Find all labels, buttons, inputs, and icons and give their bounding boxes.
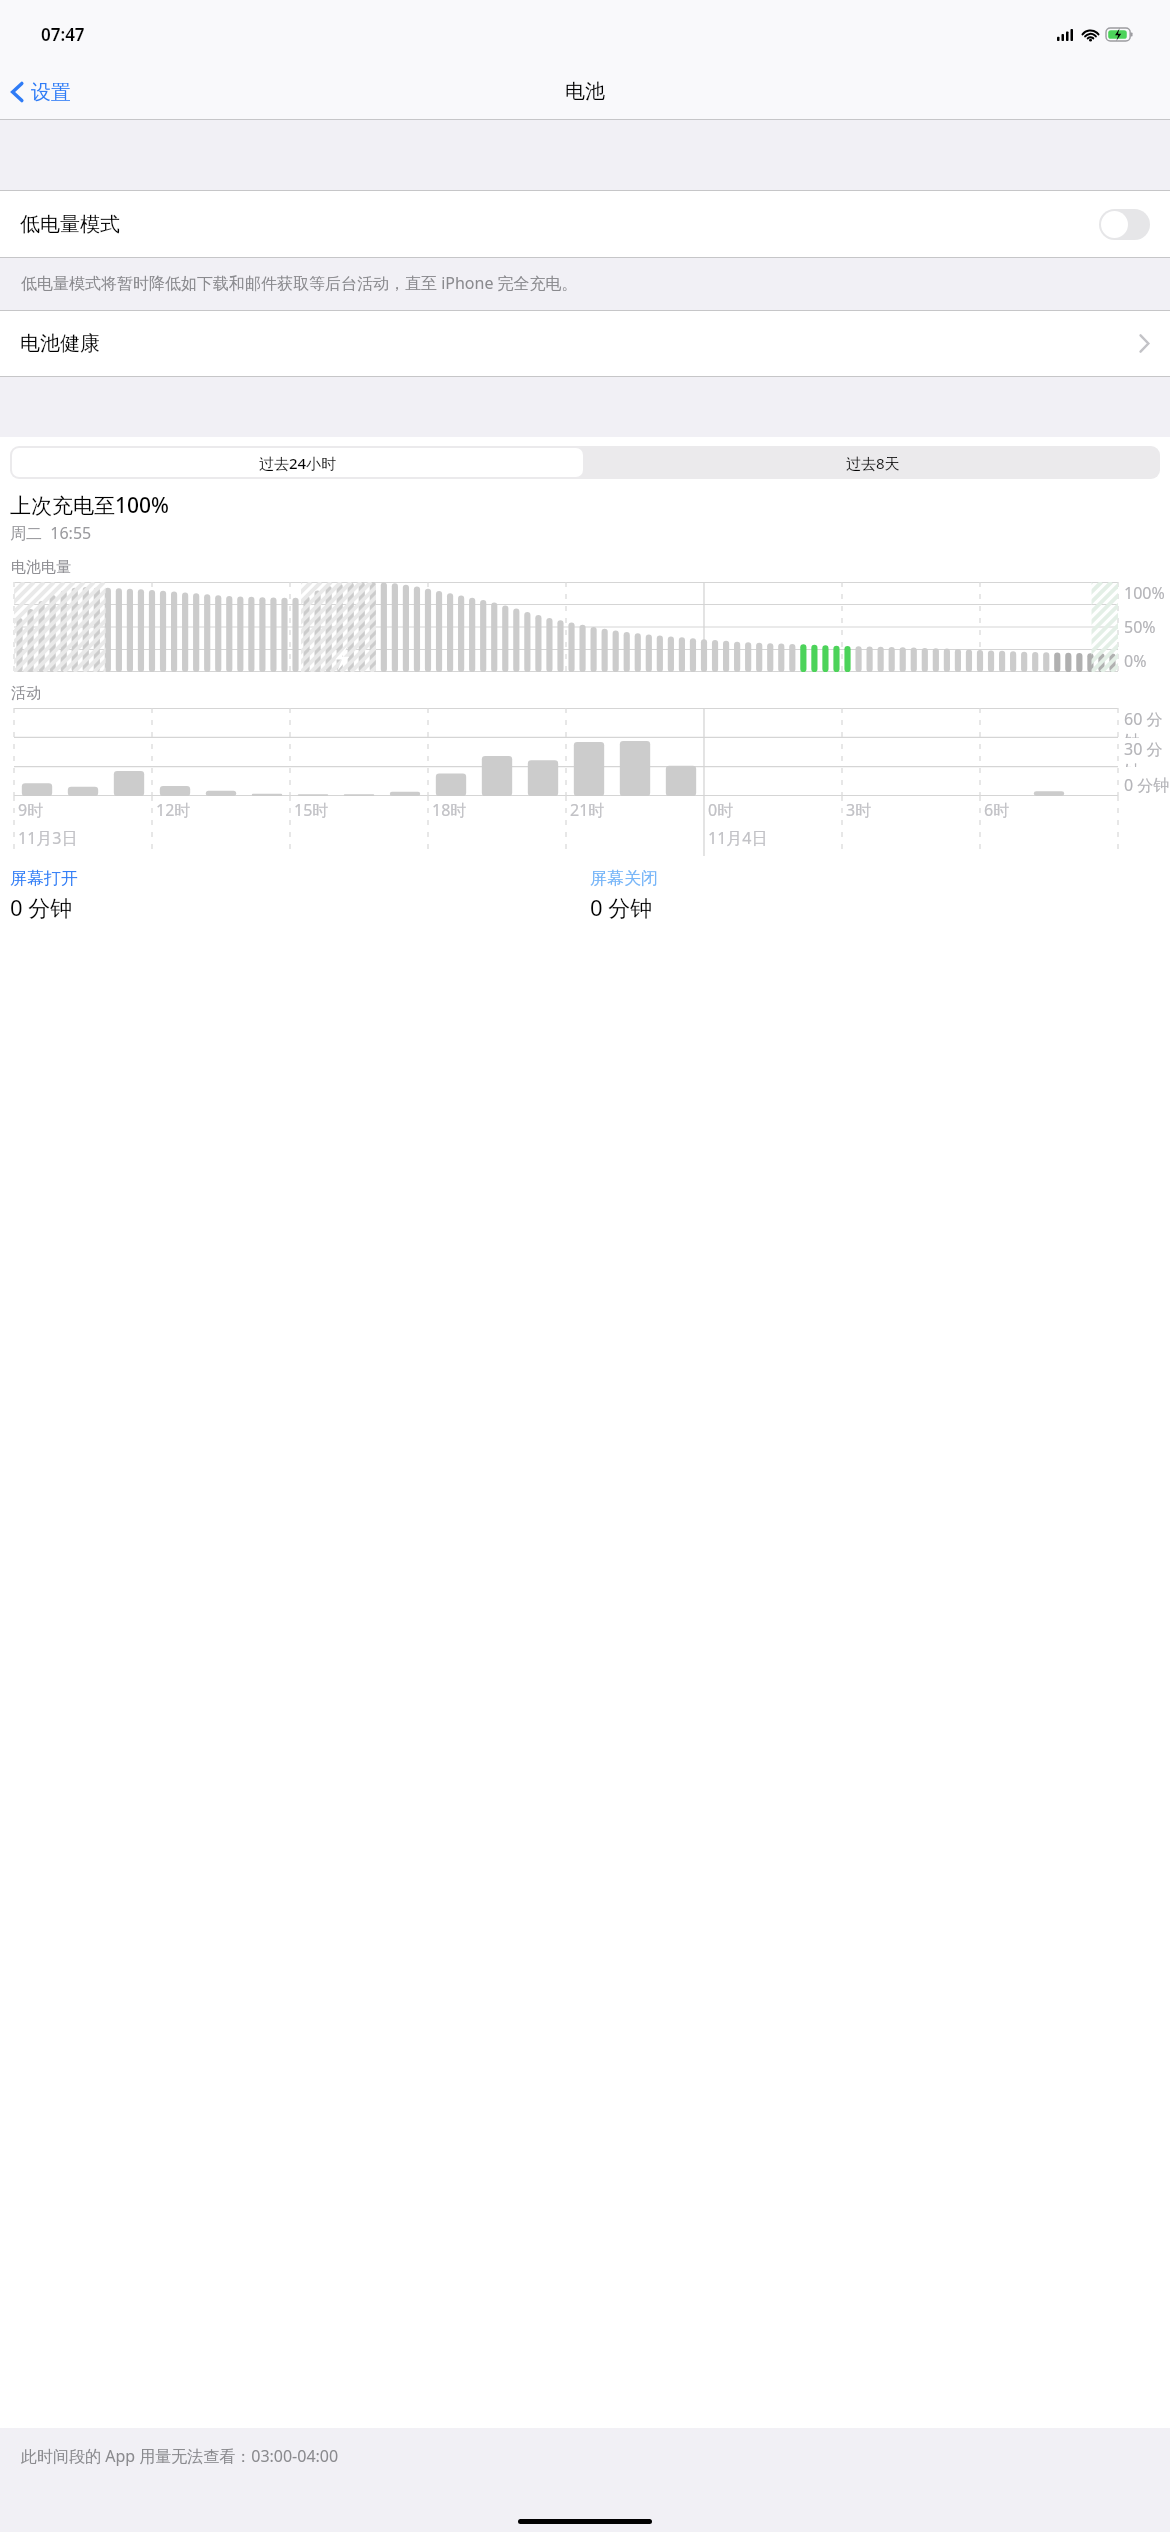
- staticText: 0 分钟: [10, 892, 73, 922]
- staticText: 0%: [1124, 650, 1147, 672]
- button[interactable]: 屏幕打开: [10, 868, 590, 922]
- staticText: 周二 16:55: [10, 522, 92, 544]
- staticText: 活动: [11, 684, 41, 703]
- staticText: 此时间段的 App 用量无法查看：03:00-04:00: [21, 2445, 339, 2467]
- staticText: 50%: [1124, 616, 1156, 638]
- staticText: 60 分钟: [1124, 708, 1170, 738]
- staticText: 屏幕打开: [10, 868, 78, 889]
- button[interactable]: 屏幕关闭: [590, 868, 1170, 922]
- button[interactable]: 低电量模式开关: [1099, 209, 1150, 240]
- staticText: 设置: [31, 80, 71, 105]
- staticText: 过去8天: [846, 453, 900, 473]
- staticText: 21时: [570, 799, 605, 821]
- staticText: 11月4日: [708, 827, 768, 849]
- staticText: 0 分钟: [590, 892, 653, 922]
- staticText: 屏幕关闭: [590, 868, 658, 889]
- staticText: 3时: [846, 799, 872, 821]
- staticText: 上次充电至100%: [10, 491, 169, 520]
- staticText: 电池健康: [20, 331, 100, 356]
- staticText: 0时: [708, 799, 734, 821]
- button[interactable]: 电池健康: [0, 311, 1170, 376]
- staticText: 6时: [984, 799, 1010, 821]
- staticText: 11月3日: [18, 827, 78, 849]
- button[interactable]: 过去8天: [587, 448, 1158, 477]
- staticText: 30 分钟: [1124, 738, 1170, 767]
- staticText: 电池: [565, 79, 605, 104]
- staticText: 100%: [1124, 582, 1165, 604]
- staticText: 电池电量: [11, 558, 71, 577]
- staticText: 0 分钟: [1124, 774, 1170, 796]
- staticText: 12时: [156, 799, 191, 821]
- staticText: 低电量模式将暂时降低如下载和邮件获取等后台活动，直至 iPhone 完全充电。: [21, 272, 578, 294]
- staticText: 低电量模式: [20, 212, 120, 237]
- staticText: 18时: [432, 799, 467, 821]
- staticText: 过去24小时: [259, 453, 337, 473]
- staticText: 07:47: [41, 23, 85, 46]
- button[interactable]: 设置: [0, 75, 81, 109]
- staticText: 9时: [18, 799, 44, 821]
- button[interactable]: 低电量模式: [0, 191, 1170, 257]
- button[interactable]: 过去24小时: [12, 448, 583, 477]
- staticText: 15时: [294, 799, 329, 821]
